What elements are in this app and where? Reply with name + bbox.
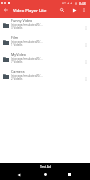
button[interactable]: Back xyxy=(14,170,24,179)
staticText: 1 Videos xyxy=(11,43,23,47)
button[interactable]: Funny Video xyxy=(0,18,90,35)
staticText: /storage/emulated/0/DCIM/Cam xyxy=(11,74,44,78)
staticText: /storage/emulated/0/Download xyxy=(11,40,44,44)
button[interactable]: Search xyxy=(57,5,67,15)
button[interactable]: Back xyxy=(1,5,11,15)
staticText: /storage/emulated/0/Download xyxy=(11,23,44,27)
button[interactable]: Recents xyxy=(64,170,74,179)
staticText: MyVideo xyxy=(11,52,26,57)
staticText: Video Player Lite xyxy=(13,8,47,14)
button[interactable]: More xyxy=(82,75,90,83)
staticText: Camera xyxy=(11,69,25,74)
staticText: Funny Video xyxy=(11,18,33,23)
button[interactable]: More xyxy=(82,41,90,49)
staticText: 3 Videos xyxy=(11,26,23,30)
staticText: /storage/emulated/0/Download xyxy=(11,57,44,61)
staticText: 2 Videos xyxy=(11,77,23,81)
staticText: Test Ad xyxy=(40,165,51,169)
button[interactable]: Camera xyxy=(0,69,90,86)
button[interactable]: Film xyxy=(0,35,90,52)
button[interactable]: Home xyxy=(40,170,50,179)
button[interactable]: Play xyxy=(69,5,79,15)
staticText: 8:48 xyxy=(79,1,86,6)
button[interactable]: More xyxy=(82,58,90,66)
button[interactable]: More options xyxy=(79,5,89,15)
staticText: Film xyxy=(11,35,19,40)
button[interactable]: More xyxy=(82,24,90,32)
staticText: 7 Videos xyxy=(11,60,23,64)
button[interactable]: MyVideo xyxy=(0,52,90,69)
